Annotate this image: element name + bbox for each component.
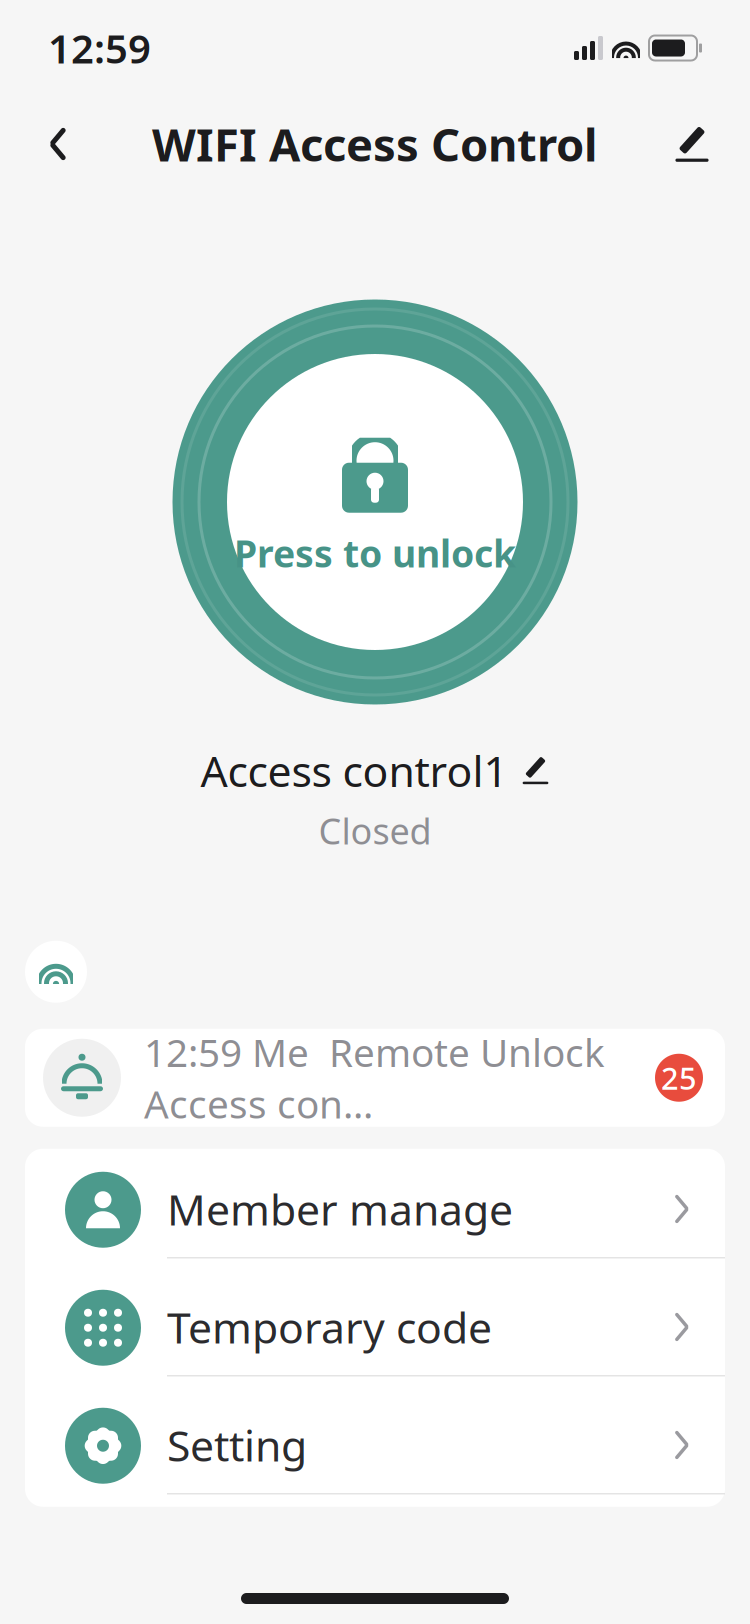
staticText: Temporary code bbox=[167, 1299, 492, 1355]
button[interactable]: Access control1 bbox=[200, 742, 549, 799]
staticText: WIFI Access Control bbox=[152, 114, 598, 174]
staticText: Access control1 bbox=[200, 742, 507, 799]
staticText: Closed bbox=[318, 807, 431, 854]
button[interactable]: Wi-Fi connected bbox=[25, 941, 87, 1003]
button[interactable]: Setting bbox=[25, 1387, 725, 1505]
button[interactable]: Edit bbox=[656, 108, 728, 180]
staticText: 12:59 Me Remote Unlock Access con... bbox=[144, 1026, 605, 1129]
button[interactable]: Press to unlock bbox=[165, 292, 585, 712]
button[interactable]: Member manage bbox=[25, 1151, 725, 1269]
staticText: 25 bbox=[661, 1057, 697, 1098]
button[interactable]: Temporary code bbox=[25, 1269, 725, 1387]
staticText: Setting bbox=[167, 1417, 307, 1473]
staticText: Member manage bbox=[167, 1181, 513, 1237]
staticText: 12:59 bbox=[48, 21, 151, 74]
staticText: Press to unlock bbox=[234, 528, 516, 578]
button[interactable]: Back bbox=[22, 108, 94, 180]
button[interactable]: 12:59 Me Remote Unlock Access con... bbox=[25, 1029, 725, 1127]
